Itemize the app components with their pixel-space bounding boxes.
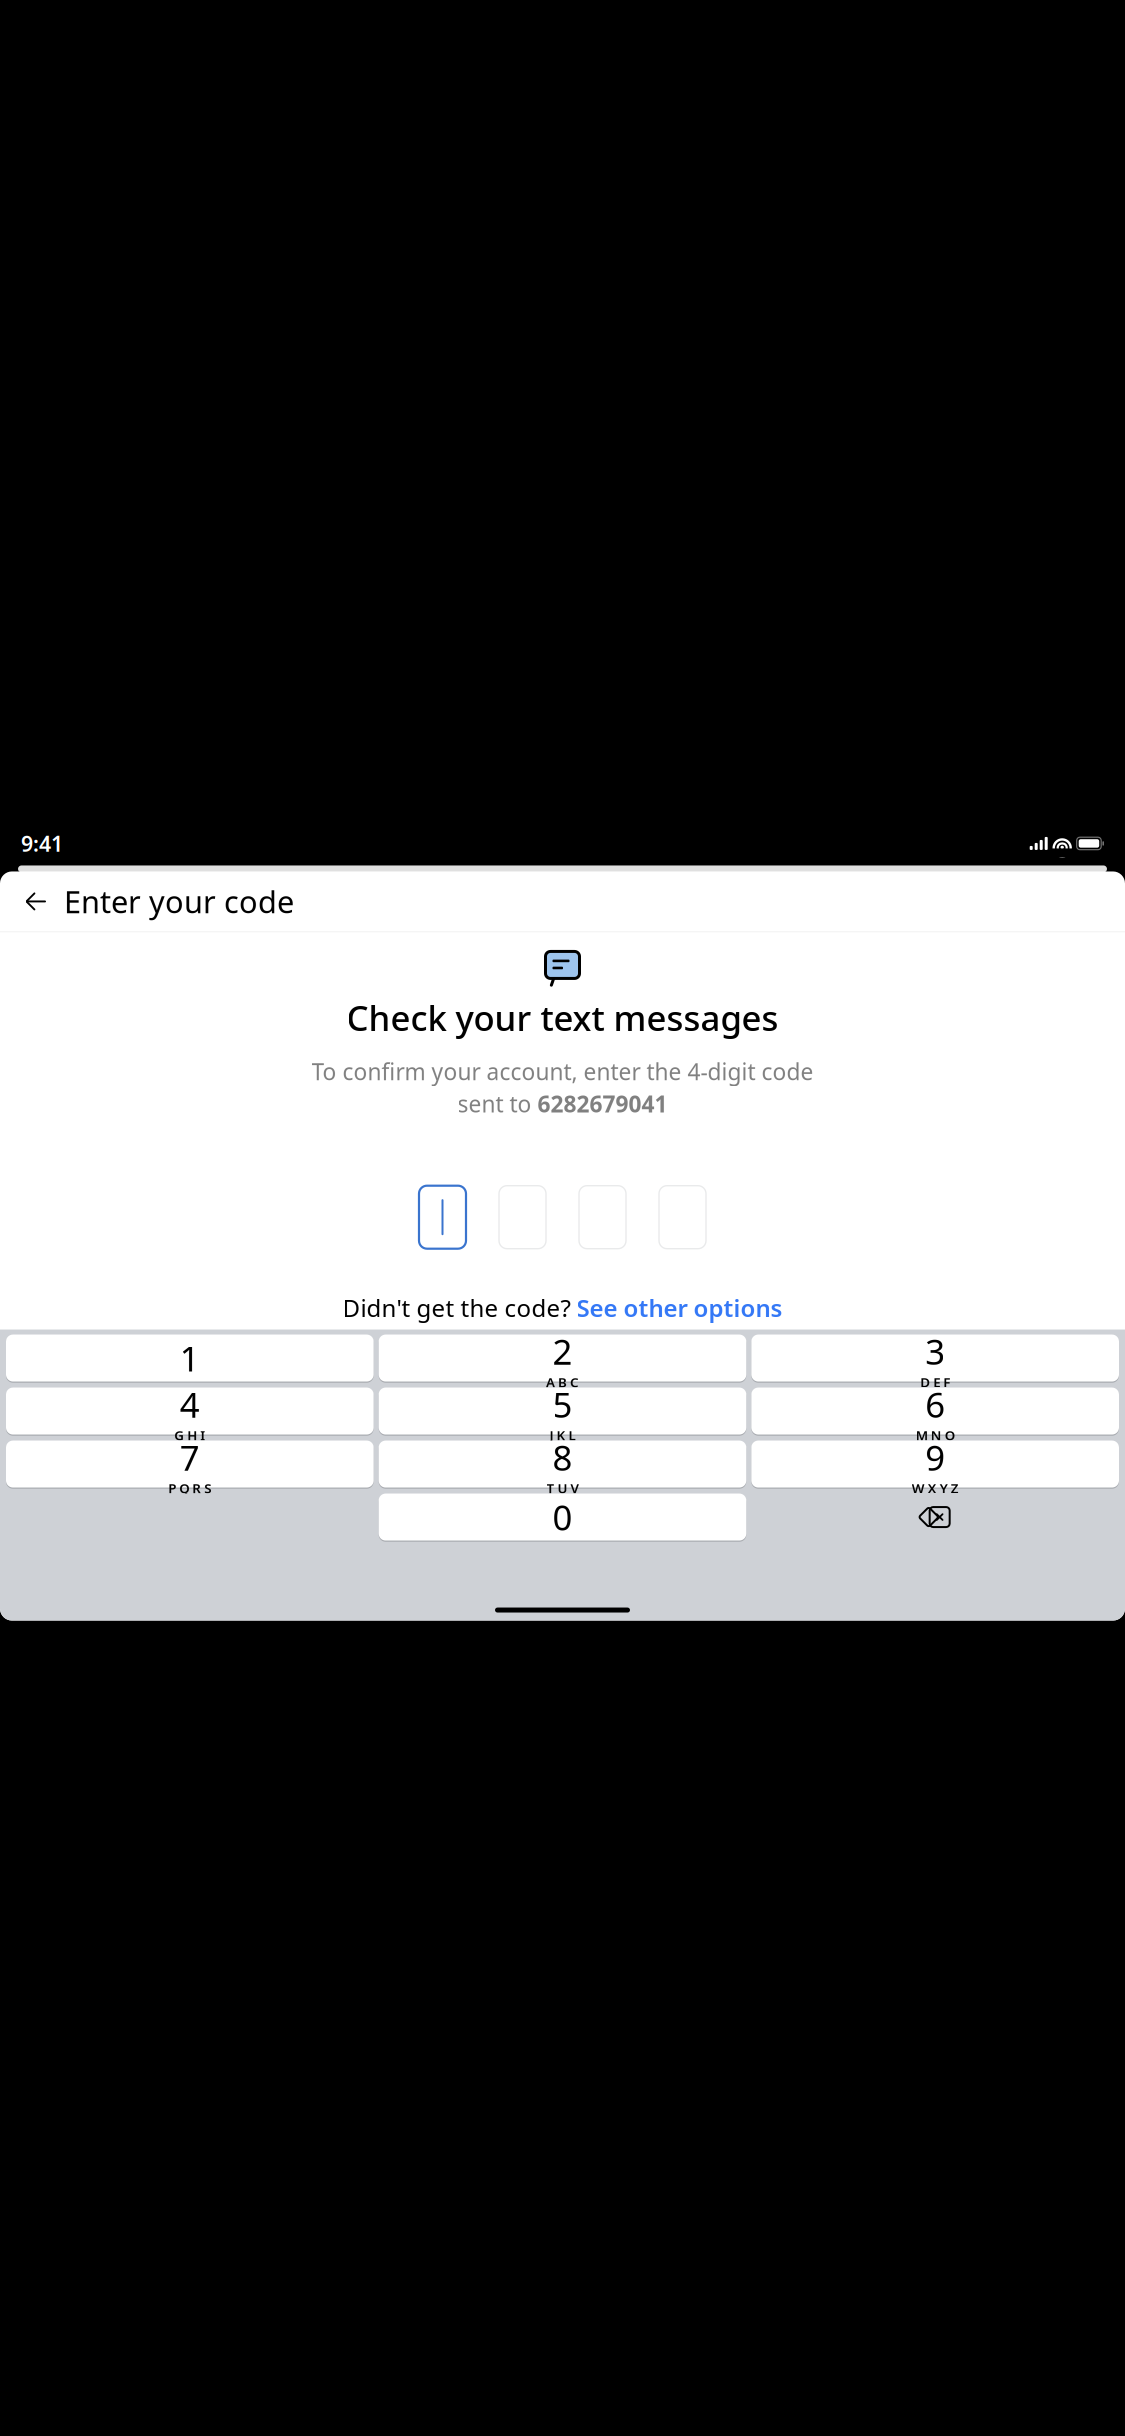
staticText: 9 (925, 1434, 945, 1480)
staticText: P Q R S (168, 1479, 211, 1497)
button[interactable]: 5 (379, 1388, 746, 1435)
staticText: See other options (576, 1292, 782, 1324)
staticText: J K L (549, 1426, 575, 1444)
button[interactable]: 2 (379, 1335, 746, 1382)
staticText: D E F (920, 1373, 950, 1391)
staticText: 5 (552, 1381, 572, 1427)
staticText: W X Y Z (912, 1479, 959, 1497)
staticText: 8 (552, 1434, 572, 1480)
staticText: A B C (546, 1373, 579, 1391)
staticText: To confirm your account, enter the 4-dig… (311, 1056, 813, 1087)
staticText: 9:41 (21, 829, 63, 858)
staticText: 1 (180, 1335, 200, 1381)
button[interactable]: 7 (6, 1441, 374, 1488)
staticText: 0 (552, 1494, 572, 1540)
staticText: Enter your code (64, 881, 294, 922)
staticText: 3 (925, 1328, 945, 1374)
button[interactable]: Delete (751, 1494, 1119, 1541)
button[interactable]: 1 (6, 1335, 374, 1382)
button[interactable]: 4 (6, 1388, 374, 1435)
staticText: Didn't get the code? (342, 1292, 576, 1324)
button[interactable]: 3 (751, 1335, 1119, 1382)
staticText: 6282679041 (537, 1089, 667, 1119)
staticText: 7 (180, 1434, 200, 1480)
staticText: T U V (546, 1479, 578, 1497)
button[interactable]: Didn't get the code? (342, 1286, 782, 1330)
staticText: 6 (925, 1381, 945, 1427)
button[interactable]: 9 (751, 1441, 1119, 1488)
staticText: M N O (916, 1426, 955, 1444)
staticText: 2 (552, 1328, 572, 1374)
button[interactable]: 6 (751, 1388, 1119, 1435)
button[interactable]: Back (14, 879, 58, 923)
staticText: 4 (180, 1381, 200, 1427)
staticText: sent to (457, 1089, 537, 1119)
staticText: Check your text messages (346, 994, 778, 1040)
button[interactable]: 8 (379, 1441, 746, 1488)
staticText: G H I (174, 1426, 205, 1444)
button[interactable]: 0 (379, 1494, 746, 1541)
